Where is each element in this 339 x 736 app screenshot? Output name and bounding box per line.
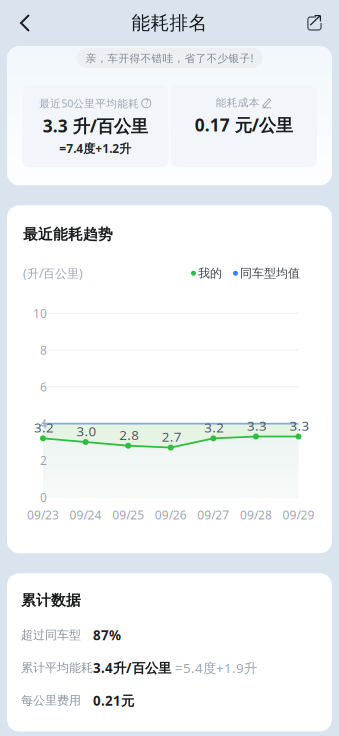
- staticText: 8: [40, 342, 47, 358]
- staticText: 09/27: [197, 507, 229, 523]
- staticText: 3.2: [204, 418, 224, 436]
- staticText: =5.4度+1.9升: [175, 659, 257, 677]
- staticText: 0.21元: [93, 692, 134, 709]
- button[interactable]: 分享: [292, 1, 336, 45]
- staticText: =7.4度+1.2升: [59, 140, 131, 156]
- staticText: 4: [40, 416, 47, 432]
- staticText: 09/23: [27, 507, 59, 523]
- staticText: 同车型均值: [240, 266, 300, 281]
- staticText: 累计数据: [21, 591, 81, 609]
- staticText: 我的: [198, 266, 222, 281]
- staticText: 亲，车开得不错哇，省了不少银子!: [85, 51, 253, 65]
- staticText: 0: [40, 489, 47, 505]
- staticText: 09/25: [112, 507, 144, 523]
- staticText: ?: [145, 98, 148, 108]
- staticText: 09/26: [155, 507, 187, 523]
- staticText: 3.0: [77, 422, 97, 440]
- staticText: 超过同车型: [21, 628, 81, 642]
- staticText: 2.7: [162, 428, 182, 445]
- staticText: 09/29: [282, 507, 314, 523]
- staticText: 最近能耗趋势: [23, 225, 113, 243]
- staticText: 3.4升/百公里: [93, 659, 171, 677]
- staticText: 09/28: [240, 507, 272, 523]
- staticText: 能耗成本: [216, 96, 260, 109]
- staticText: (升/百公里): [23, 265, 83, 281]
- staticText: 2: [40, 452, 47, 468]
- staticText: 2.8: [119, 426, 139, 444]
- staticText: 3.3: [247, 417, 267, 434]
- staticText: 最近50公里平均能耗: [39, 96, 139, 110]
- staticText: 09/24: [70, 507, 102, 523]
- staticText: 3.3: [289, 417, 309, 434]
- staticText: 能耗排名: [131, 11, 207, 34]
- staticText: 6: [40, 379, 47, 395]
- staticText: 87%: [93, 626, 121, 644]
- staticText: 累计平均能耗: [21, 660, 93, 675]
- staticText: 3.3 升/百公里: [43, 114, 148, 137]
- staticText: 10: [33, 305, 47, 321]
- button[interactable]: 返回: [3, 1, 47, 45]
- staticText: 0.17 元/公里: [195, 113, 293, 136]
- staticText: 3.2: [34, 418, 54, 436]
- staticText: 每公里费用: [21, 693, 81, 708]
